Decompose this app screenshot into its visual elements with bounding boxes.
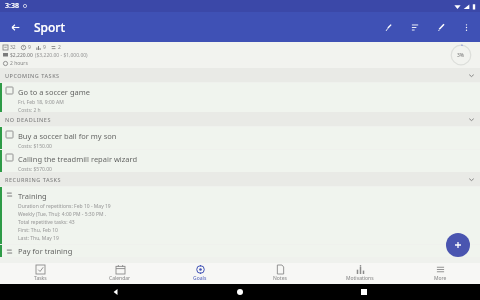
staticText: Pay for training <box>18 246 73 256</box>
button[interactable]: More <box>400 263 480 284</box>
button[interactable]: Home <box>232 284 248 300</box>
button[interactable]: Edit <box>428 14 454 40</box>
staticText: Costs: $150.00 <box>18 143 52 149</box>
button[interactable]: Buy a soccer ball for my son <box>0 127 480 149</box>
staticText: Motivations <box>346 275 374 282</box>
staticText: 3% <box>457 52 465 59</box>
staticText: $2,220.00 <box>10 52 33 59</box>
staticText: Tasks <box>34 275 47 282</box>
button[interactable]: UPCOMING TASKS <box>0 68 480 82</box>
button[interactable]: Add <box>446 233 470 257</box>
button[interactable]: Goals <box>160 263 240 284</box>
staticText: First: Thu, Feb 10 <box>18 227 58 234</box>
button[interactable]: Calendar <box>80 263 160 284</box>
button[interactable]: Notes <box>240 263 320 284</box>
staticText: 9 <box>28 44 31 51</box>
staticText: More <box>434 275 447 282</box>
staticText: Calendar <box>109 275 131 282</box>
button[interactable]: RECURRING TASKS <box>0 172 480 186</box>
button[interactable]: Motivations <box>320 263 400 284</box>
button[interactable]: Back <box>108 284 124 300</box>
button[interactable]: Calling the treadmill repair wizard <box>0 150 480 172</box>
staticText: ($3,220.00 - $1,000.00) <box>35 52 88 59</box>
button[interactable]: Sort <box>402 14 428 40</box>
staticText: Weekly (Tue, Thu): 4:00 PM - 5:30 PM . <box>18 211 107 218</box>
staticText: 2 <box>58 44 61 51</box>
button[interactable]: Tasks <box>0 263 80 284</box>
staticText: UPCOMING TASKS <box>5 72 60 79</box>
staticText: Buy a soccer ball for my son <box>18 131 117 141</box>
staticText: Training <box>18 191 47 201</box>
staticText: 9 <box>43 44 46 51</box>
staticText: Calling the treadmill repair wizard <box>18 154 138 164</box>
button[interactable]: Recent apps <box>356 284 372 300</box>
button[interactable]: Pin <box>376 14 402 40</box>
button[interactable]: NO DEADLINES <box>0 112 480 126</box>
staticText: RECURRING TASKS <box>5 176 62 183</box>
staticText: Notes <box>273 275 287 282</box>
staticText: Costs: $570.00 <box>18 166 52 172</box>
staticText: Costs: 2 h <box>18 107 41 112</box>
staticText: Last: Thu, May 19 <box>18 235 59 242</box>
staticText: Fri, Feb 18, 9:00 AM <box>18 99 64 106</box>
staticText: Total repetitive tasks: 43 <box>18 219 75 226</box>
staticText: 32 <box>10 44 16 51</box>
button[interactable]: Training <box>0 187 480 244</box>
button[interactable]: Back <box>0 12 30 42</box>
button[interactable]: Go to a soccer game <box>0 83 480 112</box>
staticText: Goals <box>193 275 207 282</box>
staticText: Go to a soccer game <box>18 87 90 97</box>
staticText: Duration of repetitions: Feb 10 - May 19 <box>18 203 111 210</box>
staticText: 2 hours <box>10 60 28 67</box>
button[interactable]: More options <box>454 15 478 39</box>
staticText: NO DEADLINES <box>5 116 51 123</box>
staticText: Sport <box>34 19 66 35</box>
button[interactable]: Pay for training <box>0 245 480 257</box>
staticText: 3:38 <box>5 1 19 11</box>
